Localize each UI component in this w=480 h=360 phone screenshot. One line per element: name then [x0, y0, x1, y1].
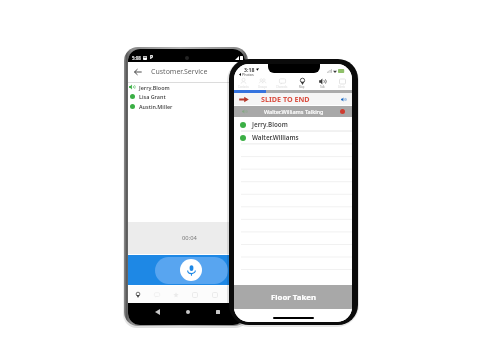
staticText: Jerry.Bloom	[252, 120, 288, 129]
staticText: Austin.Miller	[139, 103, 173, 110]
button[interactable]: More	[225, 286, 245, 303]
button[interactable]: Groups	[253, 77, 272, 91]
button[interactable]: SLIDE TO END	[234, 93, 352, 105]
button[interactable]: Talk	[312, 77, 332, 91]
staticText: Groups	[258, 85, 267, 89]
button[interactable]: Walter.Williams	[234, 131, 352, 144]
staticText: 5:08	[132, 55, 141, 61]
staticText: Map	[299, 85, 305, 89]
staticText: Floor Taken	[271, 292, 316, 303]
staticText: Alerts	[338, 85, 346, 89]
staticText: Photos	[242, 72, 254, 77]
staticText: 00:04	[182, 234, 197, 242]
button[interactable]: Map	[128, 286, 147, 303]
staticText: Lisa Grant	[139, 93, 166, 100]
staticText: Walter.Williams Talking	[264, 108, 324, 116]
button[interactable]: Back	[152, 307, 162, 317]
button[interactable]: Lisa Grant	[128, 91, 245, 101]
button[interactable]: Channels	[272, 77, 292, 91]
button[interactable]: Push to talk	[128, 255, 245, 285]
button[interactable]: Back	[128, 62, 148, 82]
button[interactable]: Alerts	[332, 77, 352, 91]
staticText: Jerry.Bloom	[139, 84, 170, 91]
button[interactable]: Recents	[213, 307, 223, 317]
staticText: 3:18	[244, 66, 255, 73]
staticText: Contacts	[238, 85, 249, 89]
staticText: Customer.Service	[151, 67, 208, 77]
other: Speaker	[341, 97, 346, 102]
button[interactable]: Grid	[205, 286, 225, 303]
button[interactable]: Austin.Miller	[128, 101, 245, 111]
staticText: SLIDE TO END	[261, 94, 310, 104]
button[interactable]: Jerry.Bloom	[128, 82, 245, 92]
staticText: Channels	[276, 85, 288, 89]
button[interactable]: Home	[183, 307, 193, 317]
button[interactable]: Channels	[185, 286, 205, 303]
button[interactable]: Map	[292, 77, 312, 91]
staticText: Walter.Williams	[252, 133, 299, 142]
staticText: P	[150, 54, 153, 61]
button[interactable]: Floor Taken	[234, 285, 352, 309]
staticText: Talk	[320, 85, 325, 89]
button[interactable]: Jerry.Bloom	[234, 118, 352, 131]
button[interactable]: Contacts	[234, 77, 253, 91]
